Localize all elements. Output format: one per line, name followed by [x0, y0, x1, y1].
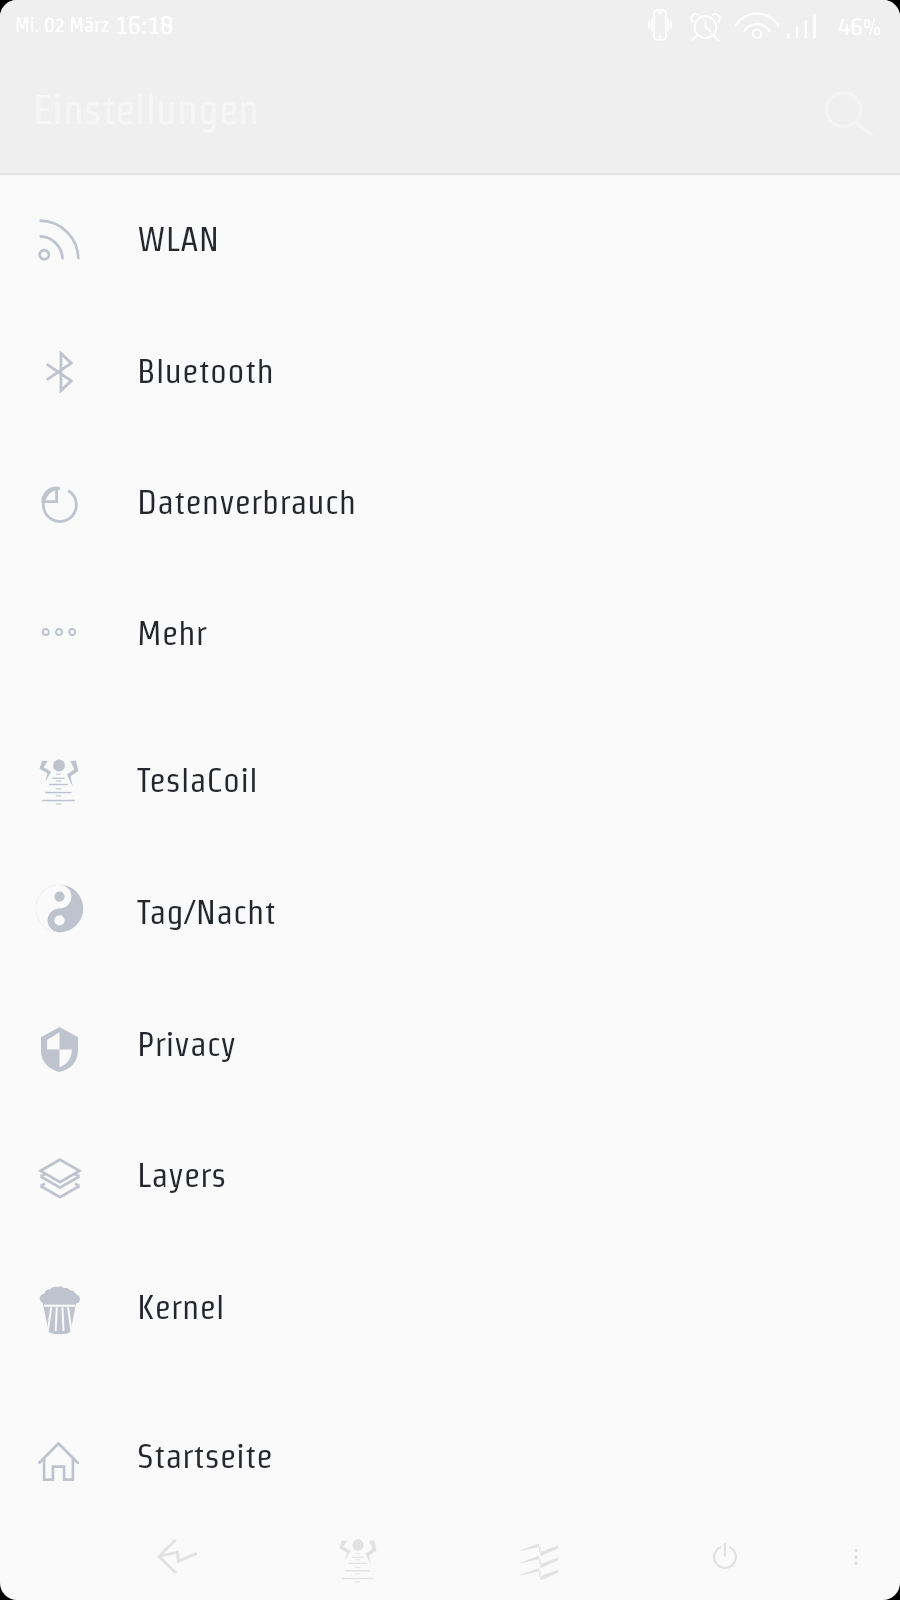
button[interactable]: Kernel — [0, 1240, 900, 1372]
staticText: 16:18 — [115, 11, 174, 39]
staticText: 46% — [838, 12, 882, 39]
button[interactable]: TeslaCoil — [313, 1512, 403, 1600]
button[interactable]: WLAN — [0, 172, 900, 304]
staticText: Startseite — [137, 1437, 273, 1474]
staticText: Kernel — [137, 1288, 225, 1325]
staticText: Bluetooth — [137, 352, 274, 389]
button[interactable]: Datenverbrauch — [0, 435, 900, 567]
button[interactable]: Layers — [0, 1108, 900, 1240]
button[interactable]: Energie — [680, 1512, 770, 1600]
button[interactable]: Bluetooth — [0, 304, 900, 436]
staticText: Tag/Nacht — [137, 893, 276, 930]
staticText: WLAN — [137, 220, 220, 257]
button[interactable]: Mehr Optionen — [811, 1512, 900, 1600]
button[interactable]: Tag/Nacht — [0, 845, 900, 977]
staticText: Mi. 02 März — [15, 14, 115, 36]
button[interactable]: Einstellen — [494, 1512, 584, 1600]
button[interactable]: TeslaCoil — [0, 713, 900, 845]
staticText: Layers — [137, 1156, 227, 1193]
button[interactable]: Mehr — [0, 566, 900, 698]
staticText: Mehr — [137, 614, 207, 651]
button[interactable]: Privacy — [0, 977, 900, 1109]
staticText: TeslaCoil — [137, 761, 259, 798]
staticText: Privacy — [137, 1025, 236, 1062]
staticText: Datenverbrauch — [137, 483, 357, 520]
button[interactable]: Zurück — [132, 1512, 222, 1600]
button[interactable]: Startseite — [0, 1389, 900, 1521]
